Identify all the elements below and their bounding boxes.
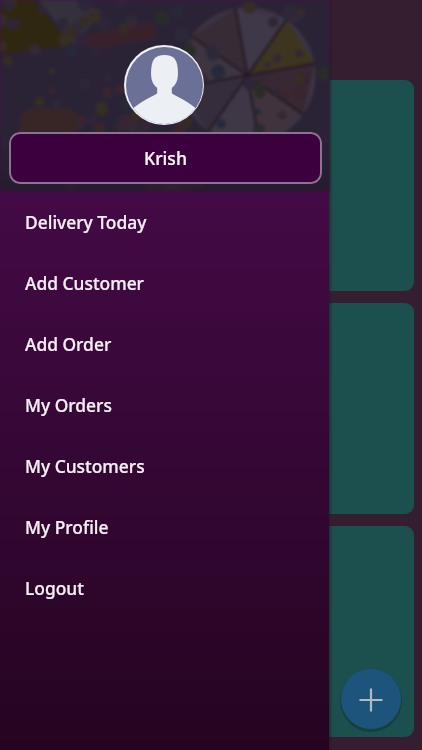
button[interactable]: Add <box>341 669 401 729</box>
staticText: Logout <box>25 576 84 600</box>
button[interactable] <box>8 80 414 291</box>
button[interactable]: My Customers <box>0 435 329 496</box>
button[interactable]: Add Order <box>0 313 329 374</box>
button[interactable]: Logout <box>0 557 329 618</box>
staticText: Delivery Today <box>25 210 147 234</box>
staticText: Add Order <box>25 332 112 356</box>
staticText: My Customers <box>25 454 145 478</box>
button[interactable]: My Orders <box>0 374 329 435</box>
button[interactable] <box>8 303 414 514</box>
button[interactable]: Add Customer <box>0 252 329 313</box>
button[interactable]: Krish <box>9 132 322 184</box>
staticText: My Orders <box>25 393 112 417</box>
button[interactable]: My Profile <box>0 496 329 557</box>
button[interactable] <box>8 526 414 737</box>
button[interactable]: Delivery Today <box>0 191 329 252</box>
staticText: Krish <box>144 146 187 170</box>
staticText: Add Customer <box>25 271 144 295</box>
staticText: My Profile <box>25 515 109 539</box>
